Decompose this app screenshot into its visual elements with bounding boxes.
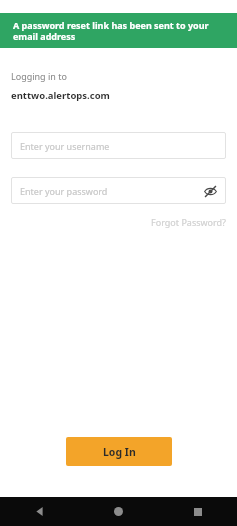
staticText: Log In	[103, 445, 136, 459]
button[interactable]: Show password	[202, 183, 218, 199]
button[interactable]: Recent apps	[158, 497, 237, 526]
button[interactable]: Home	[79, 497, 158, 526]
button[interactable]: Back	[0, 497, 79, 526]
button[interactable]: Enter your username	[11, 132, 226, 159]
staticText: Enter your password	[20, 185, 202, 197]
staticText: Logging in to	[11, 70, 67, 82]
button[interactable]: Log In	[66, 437, 172, 466]
staticText: enttwo.alertops.com	[11, 89, 110, 102]
button[interactable]: A password reset link has been sent to y…	[0, 13, 237, 48]
staticText: Enter your username	[20, 140, 110, 152]
staticText: A password reset link has been sent to y…	[13, 19, 225, 43]
button[interactable]: Forgot Password?	[149, 214, 228, 230]
button[interactable]: Enter your password	[11, 177, 226, 204]
